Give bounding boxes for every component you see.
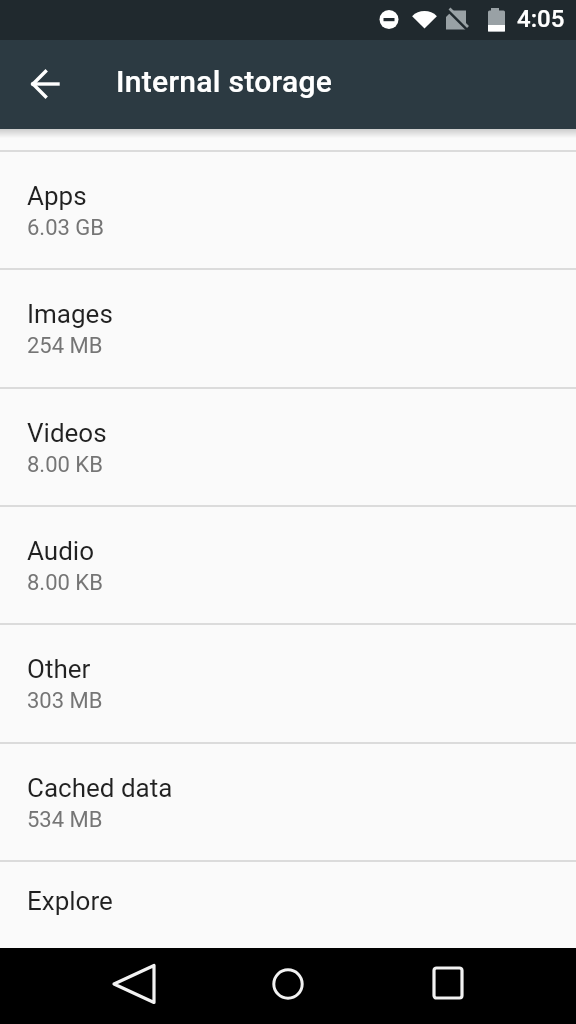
staticText: Explore [27,886,113,916]
button[interactable]: Other [0,625,576,741]
staticText: 6.03 GB [27,215,105,241]
button[interactable]: Explore [0,862,576,948]
button[interactable]: Videos [0,389,576,505]
staticText: Internal storage [116,64,333,99]
staticText: Cached data [27,773,173,803]
staticText: Apps [27,181,87,211]
button[interactable] [256,962,320,1010]
staticText: 8.00 KB [27,570,103,596]
button[interactable]: Cached data [0,744,576,860]
staticText: 8.00 KB [27,452,103,478]
staticText: Other [27,654,91,684]
staticText: Videos [27,418,107,448]
button[interactable] [416,962,480,1010]
button[interactable]: Images [0,270,576,386]
button[interactable] [20,70,72,122]
staticText: Images [27,299,113,329]
staticText: Audio [27,536,94,566]
staticText: 303 MB [27,688,103,714]
button[interactable]: Audio [0,507,576,623]
staticText: 254 MB [27,333,103,359]
staticText: 534 MB [27,807,103,833]
button[interactable] [100,962,164,1010]
staticText: 4:05 [517,5,565,33]
button[interactable]: Apps [0,152,576,268]
